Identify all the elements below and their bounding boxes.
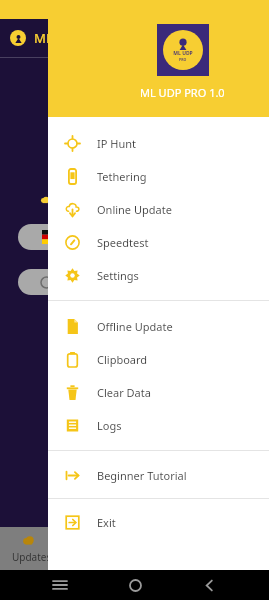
button[interactable]: Clipboard	[48, 343, 269, 376]
staticText: ML UDP	[173, 50, 193, 57]
button[interactable]: Back	[194, 570, 224, 600]
button[interactable]: Logs	[48, 409, 269, 442]
staticText: ML	[34, 29, 53, 47]
staticText: Updates	[12, 550, 52, 564]
staticText: Settings	[97, 268, 139, 283]
button[interactable]: Clear Data	[48, 376, 269, 409]
button[interactable]	[18, 224, 78, 250]
staticText: Logs	[97, 418, 122, 433]
staticText: Offline Update	[97, 319, 173, 334]
button[interactable]: Offline Update	[48, 310, 269, 343]
staticText: Clipboard	[97, 352, 148, 367]
staticText: Tethering	[97, 169, 147, 184]
staticText: IP Hunt	[97, 136, 136, 151]
button[interactable]: Tethering	[48, 160, 269, 193]
button[interactable]: Settings	[48, 259, 269, 292]
staticText: Online Update	[97, 202, 172, 217]
button[interactable]: Exit	[48, 506, 269, 539]
button[interactable]: IP Hunt	[48, 127, 269, 160]
staticText: Clear Data	[97, 385, 151, 400]
button[interactable]: Online Update	[48, 193, 269, 226]
button[interactable]: Speedtest	[48, 226, 269, 259]
button[interactable]	[18, 269, 78, 295]
button[interactable]: Home	[120, 570, 150, 600]
staticText: PRO	[179, 57, 187, 62]
button[interactable]: Beginner Tutorial	[48, 459, 269, 492]
staticText: Speedtest	[97, 235, 149, 250]
staticText: Beginner Tutorial	[97, 468, 187, 483]
button[interactable]: Recents	[45, 570, 75, 600]
staticText: Exit	[97, 515, 116, 530]
staticText: ML UDP PRO 1.0	[140, 85, 225, 100]
